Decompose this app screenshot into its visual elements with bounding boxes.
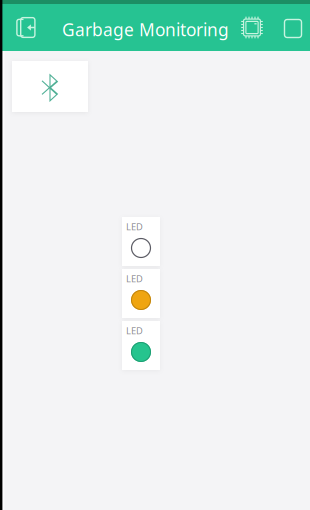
button[interactable]: LED: [122, 217, 160, 266]
button[interactable]: LED: [122, 321, 160, 370]
button[interactable]: Log out: [5, 4, 49, 51]
staticText: LED: [126, 324, 143, 337]
staticText: Garbage Monitoring: [62, 18, 229, 41]
button[interactable]: Stop: [275, 4, 310, 51]
button[interactable]: Bluetooth: [12, 61, 88, 112]
button[interactable]: Device: [234, 4, 270, 51]
button[interactable]: LED: [122, 269, 160, 318]
staticText: LED: [126, 272, 143, 285]
staticText: LED: [126, 220, 143, 233]
